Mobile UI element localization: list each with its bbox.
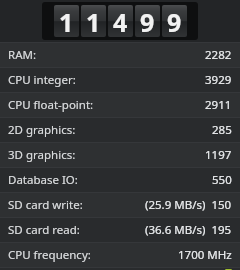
button[interactable]: Total score 11499 bbox=[42, 2, 198, 40]
staticText: (36.6 MB/s) 195 bbox=[145, 222, 232, 238]
staticText: 1 bbox=[86, 5, 101, 37]
staticText: 2012-11-09 11:58 bbox=[139, 267, 232, 270]
button[interactable]: SD card write: bbox=[0, 192, 240, 217]
button[interactable]: 2D graphics: bbox=[0, 117, 240, 142]
staticText: 1197 bbox=[205, 147, 232, 163]
button[interactable]: SD card read: bbox=[0, 217, 240, 242]
staticText: 550 bbox=[212, 172, 232, 188]
button[interactable]: Database IO: bbox=[0, 167, 240, 192]
staticText: Date: bbox=[8, 267, 37, 270]
staticText: 2D graphics: bbox=[8, 122, 76, 138]
button[interactable]: RAM: bbox=[0, 42, 240, 67]
staticText: 9 bbox=[140, 5, 155, 37]
staticText: SD card read: bbox=[8, 222, 80, 238]
staticText: 2282 bbox=[205, 47, 232, 63]
staticText: (25.9 MB/s) 150 bbox=[145, 197, 232, 213]
staticText: 3929 bbox=[205, 72, 232, 88]
button[interactable]: CPU integer: bbox=[0, 67, 240, 92]
button[interactable]: Date: bbox=[0, 267, 240, 270]
staticText: CPU float-point: bbox=[8, 97, 94, 113]
staticText: CPU integer: bbox=[8, 72, 76, 88]
staticText: 1 bbox=[59, 5, 74, 37]
button[interactable]: CPU float-point: bbox=[0, 92, 240, 117]
staticText: 9 bbox=[167, 5, 182, 37]
button[interactable]: CPU frequency: bbox=[0, 242, 240, 267]
staticText: 285 bbox=[212, 122, 232, 138]
staticText: RAM: bbox=[8, 47, 37, 63]
staticText: 2911 bbox=[205, 97, 232, 113]
staticText: CPU frequency: bbox=[8, 247, 91, 263]
staticText: Database IO: bbox=[8, 172, 78, 188]
staticText: 3D graphics: bbox=[8, 147, 76, 163]
staticText: SD card write: bbox=[8, 197, 83, 213]
staticText: 1700 MHz bbox=[178, 247, 232, 263]
staticText: 4 bbox=[113, 5, 128, 37]
button[interactable]: 3D graphics: bbox=[0, 142, 240, 167]
